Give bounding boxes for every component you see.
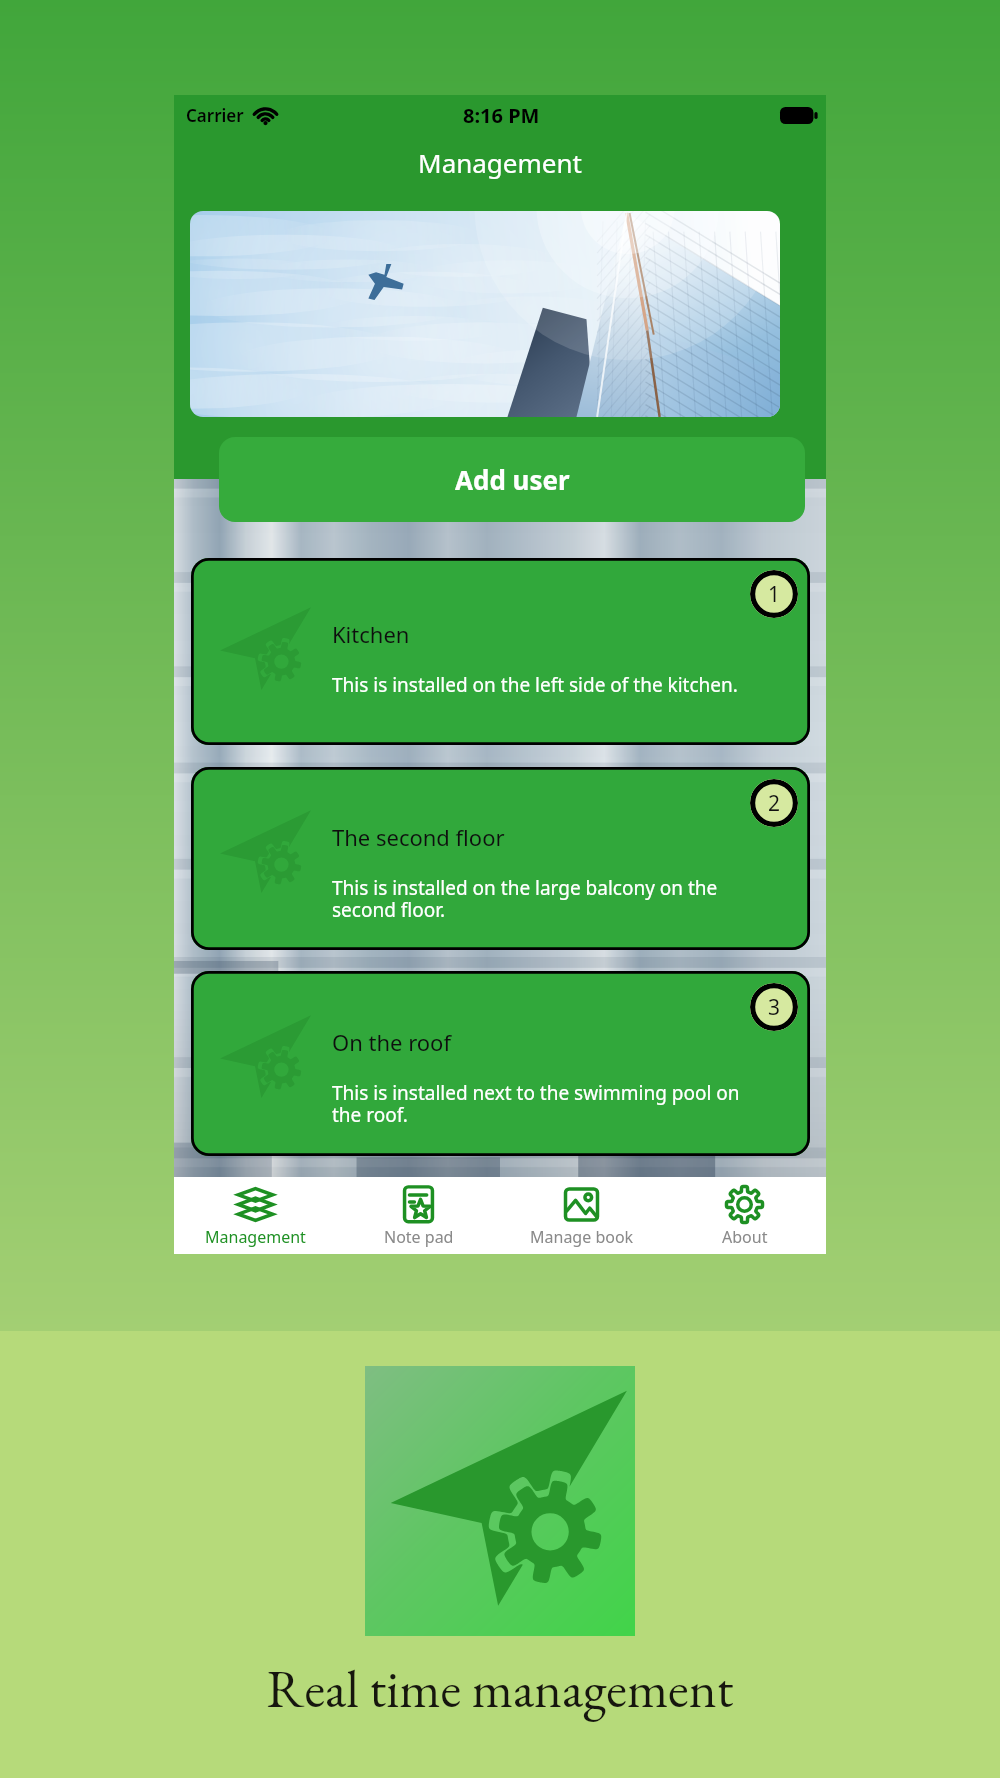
button[interactable]: Add user bbox=[219, 437, 805, 522]
staticText: 1 bbox=[768, 580, 781, 609]
staticText: Note pad bbox=[384, 1226, 454, 1248]
staticText: 8:16 PM bbox=[463, 102, 540, 129]
button[interactable]: The second floor bbox=[191, 767, 810, 950]
staticText: The second floor bbox=[332, 822, 505, 852]
staticText: Management bbox=[205, 1226, 306, 1248]
staticText: About bbox=[722, 1226, 768, 1248]
staticText: 2 bbox=[768, 789, 781, 818]
button[interactable]: On the roof bbox=[191, 971, 810, 1156]
staticText: Real time management bbox=[0, 1654, 1000, 1723]
button[interactable]: Note pad bbox=[337, 1177, 500, 1254]
button[interactable]: Kitchen bbox=[191, 558, 810, 745]
staticText: Kitchen bbox=[332, 619, 410, 649]
button[interactable]: About bbox=[663, 1177, 826, 1254]
button[interactable]: Management bbox=[174, 1177, 337, 1254]
staticText: This is installed on the left side of th… bbox=[332, 672, 738, 698]
staticText: 3 bbox=[768, 993, 781, 1022]
staticText: This is installed on the large balcony o… bbox=[332, 875, 718, 923]
staticText: On the roof bbox=[332, 1027, 451, 1057]
staticText: This is installed next to the swimming p… bbox=[332, 1080, 740, 1128]
staticText: Add user bbox=[455, 462, 570, 497]
staticText: Management bbox=[174, 145, 826, 180]
staticText: Carrier bbox=[186, 104, 244, 127]
button[interactable]: Manage book bbox=[500, 1177, 663, 1254]
staticText: Manage book bbox=[530, 1226, 634, 1248]
